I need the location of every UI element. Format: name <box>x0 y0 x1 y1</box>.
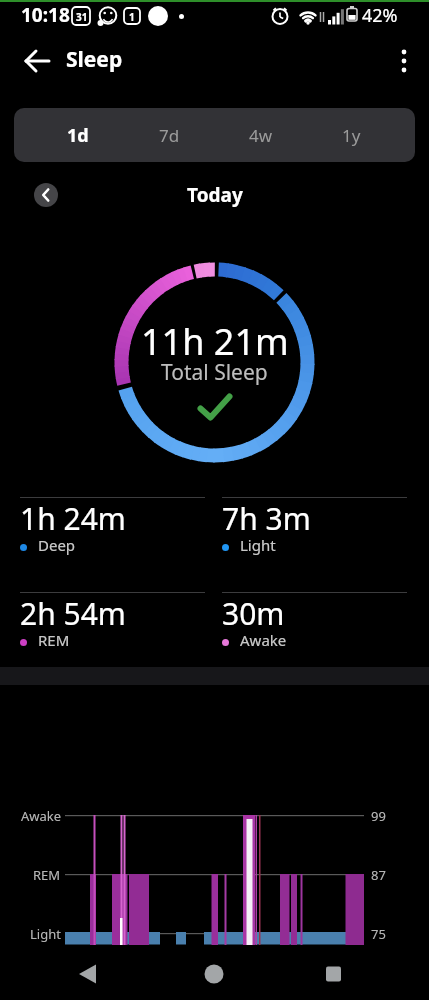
staticText: 4w <box>249 124 273 147</box>
staticText: Light <box>30 925 61 943</box>
button[interactable] <box>384 40 426 82</box>
button[interactable]: 7d <box>124 108 215 162</box>
button[interactable] <box>0 952 143 1000</box>
staticText: 99 <box>371 807 386 825</box>
staticText: 1d <box>67 123 89 148</box>
button[interactable]: 4w <box>215 108 306 162</box>
staticText: 42% <box>362 3 398 28</box>
staticText: 31 <box>76 10 88 24</box>
button[interactable]: 1h 24m <box>20 497 205 592</box>
staticText: Sleep <box>66 45 123 74</box>
button[interactable]: 7h 3m <box>222 497 407 592</box>
staticText: 10:18 <box>21 2 70 28</box>
staticText: Awake <box>21 807 62 825</box>
staticText: 7d <box>159 124 180 147</box>
button[interactable]: 30m <box>222 592 407 667</box>
staticText: REM <box>33 866 61 884</box>
button[interactable]: 1y <box>306 108 397 162</box>
staticText: 1y <box>342 124 361 147</box>
staticText: 1 <box>129 10 135 24</box>
button[interactable] <box>286 952 429 1000</box>
button[interactable] <box>34 183 58 207</box>
staticText: 11h 21m <box>141 317 289 366</box>
staticText: 1h 24m <box>20 498 126 539</box>
staticText: REM <box>38 630 70 650</box>
button[interactable] <box>14 38 60 84</box>
staticText: 30m <box>222 593 285 634</box>
staticText: 75 <box>371 925 386 943</box>
staticText: Total Sleep <box>161 358 268 387</box>
staticText: 2h 54m <box>20 593 126 634</box>
button[interactable] <box>143 952 286 1000</box>
staticText: Light <box>240 535 276 555</box>
staticText: 87 <box>371 866 386 884</box>
button[interactable]: 2h 54m <box>20 592 205 667</box>
staticText: Today <box>187 182 243 208</box>
staticText: 7h 3m <box>222 498 311 539</box>
staticText: Deep <box>38 535 76 555</box>
staticText: Awake <box>240 630 287 650</box>
button[interactable]: 1d <box>32 108 124 162</box>
